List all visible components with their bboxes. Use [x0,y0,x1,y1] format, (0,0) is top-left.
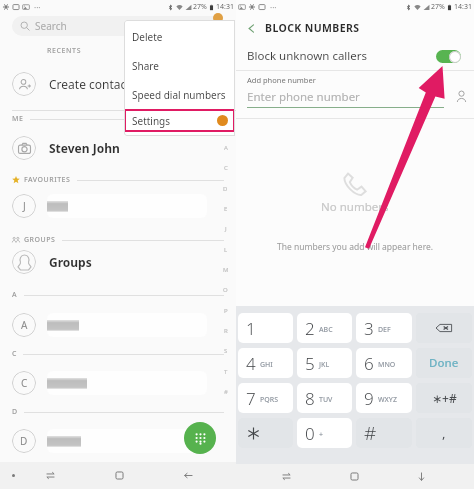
button[interactable]: Notifications [1,462,25,489]
button[interactable]: Steven John [0,126,236,170]
button[interactable]: Back [172,462,204,489]
staticText: D [223,185,228,193]
staticText: DEF [378,325,391,335]
button[interactable]: # [356,418,412,448]
staticText: ··· [34,2,41,13]
staticText: JKL [319,360,330,370]
button[interactable]: Recents [34,462,66,489]
staticText: 6 [364,352,374,375]
staticText: E [224,205,228,213]
button[interactable]: Done [416,348,472,378]
staticText: 14:31 [454,2,472,12]
staticText: Search [35,19,67,33]
button[interactable]: 3 [356,313,412,343]
staticText: Speed dial numbers [132,88,226,102]
staticText: TUV [319,395,333,405]
button[interactable]: Back [243,20,259,36]
staticText: J [225,225,227,233]
button[interactable]: Delete [124,22,235,51]
staticText: RECENTS [47,46,82,56]
staticText: 3 [364,317,374,340]
staticText: # [224,388,228,396]
staticText: ME [12,114,24,124]
staticText: GHI [260,360,273,370]
staticText: T [224,368,228,376]
button[interactable]: 7 [238,383,293,413]
button[interactable]: 2 [297,313,352,343]
staticText: J [23,199,26,213]
staticText: Add phone number [247,75,316,85]
staticText: Block unknown callers [247,48,368,64]
staticText: ∗+# [432,390,457,406]
staticText: 1 [246,317,256,340]
staticText: BLOCK NUMBERS [265,21,360,35]
button[interactable]: 0 [297,418,352,448]
staticText: 14:31 [216,2,234,12]
button[interactable] [238,418,293,448]
staticText: C [12,349,17,359]
staticText: MNO [378,360,396,370]
staticText: R [224,327,228,335]
button[interactable]: C [0,361,236,405]
button[interactable]: 9 [356,383,412,413]
button[interactable]: Backspace [416,313,472,343]
button[interactable]: Speed dial numbers [124,80,235,109]
button[interactable]: Comma [416,418,472,448]
staticText: M [223,266,229,274]
staticText: D [20,434,28,448]
staticText: A [12,290,18,300]
staticText: 4 [246,352,256,375]
staticText: A [224,144,228,152]
button[interactable]: 8 [297,383,352,413]
staticText: S [224,347,228,355]
button[interactable]: Block unknown callers [247,42,461,70]
staticText: GROUPS [24,235,56,245]
button[interactable]: J [0,184,236,228]
staticText: FAVOURITES [24,175,71,185]
staticText: Create contact [49,76,131,92]
staticText: D [12,407,18,417]
staticText: , [442,424,446,442]
button[interactable]: 1 [238,313,293,343]
staticText: 5 [305,352,315,375]
staticText: P [224,307,228,315]
staticText: A [21,318,28,332]
button[interactable]: 6 [356,348,412,378]
staticText: Share [132,59,159,73]
button[interactable]: 4 [238,348,293,378]
button[interactable]: Dialpad [184,422,216,454]
staticText: Enter phone number [247,89,360,105]
button[interactable]: Hide keyboard [405,464,437,489]
staticText: L [224,246,228,254]
staticText: O [223,286,228,294]
button[interactable]: Create contact [0,62,236,106]
staticText: The numbers you add will appear here. [277,241,434,253]
button[interactable]: Search [12,16,224,36]
staticText: 9 [364,387,374,410]
staticText: Done [429,355,459,371]
staticText: ABC [319,325,333,335]
staticText: 2 [305,317,315,340]
button[interactable]: A [0,303,236,347]
staticText: Delete [132,30,163,44]
staticText: 27% [193,2,207,12]
staticText: # [364,420,377,446]
staticText: 7 [246,387,256,410]
button[interactable]: Share [124,51,235,80]
staticText: Groups [49,254,92,270]
button[interactable]: D [0,419,236,463]
staticText: Steven John [49,140,120,156]
button[interactable]: Home [103,462,135,489]
staticText: C [224,164,228,172]
button[interactable]: Home [338,464,370,489]
staticText: 27% [431,2,445,12]
button[interactable]: Groups [0,240,236,284]
button[interactable]: 5 [297,348,352,378]
staticText: + [319,430,324,440]
staticText: ··· [270,2,277,13]
button[interactable]: Settings [124,109,235,132]
button[interactable]: Recents [270,464,302,489]
staticText: WXYZ [378,395,397,405]
button[interactable]: Symbols [416,383,472,413]
staticText: Settings [132,114,171,128]
